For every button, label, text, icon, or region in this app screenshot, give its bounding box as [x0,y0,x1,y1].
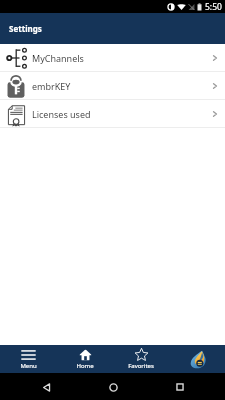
button[interactable]: embr app [169,345,225,373]
button[interactable]: Home [57,345,113,373]
button[interactable]: embrKEY [0,72,225,100]
button[interactable]: Favorites [113,345,169,373]
staticText: 5:50 [205,1,222,13]
staticText: Menu [20,362,37,370]
staticText: Home [76,362,94,370]
staticText: Settings [9,23,42,34]
button[interactable]: Recent apps [170,377,190,397]
button[interactable]: Back [36,377,56,397]
staticText: Licenses used [32,108,91,120]
staticText: embrKEY [32,80,71,92]
staticText: MyChannels [32,52,84,64]
staticText: Favorites [128,362,154,370]
button[interactable]: Licenses used [0,100,225,128]
button[interactable]: Home [103,377,123,397]
button[interactable]: MyChannels [0,44,225,72]
button[interactable]: Menu [0,345,57,373]
